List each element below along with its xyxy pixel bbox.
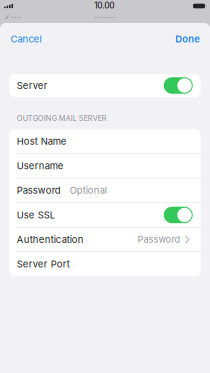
staticText: Host Name bbox=[17, 136, 67, 147]
staticText: Password bbox=[138, 234, 181, 245]
staticText: Use SSL bbox=[17, 209, 55, 221]
button[interactable]: Host Name bbox=[9, 129, 201, 153]
staticText: Password bbox=[17, 185, 61, 196]
button[interactable]: Username bbox=[9, 154, 201, 178]
staticText: 10.00 bbox=[94, 0, 114, 10]
staticText: OUTGOING MAIL SERVER bbox=[17, 114, 107, 123]
button[interactable]: Server Port bbox=[9, 252, 201, 276]
button[interactable]: Password bbox=[9, 178, 201, 202]
staticText: Done bbox=[175, 33, 200, 45]
button[interactable]: Use SSL bbox=[9, 203, 201, 227]
button[interactable]: Cancel bbox=[0, 23, 49, 51]
staticText: Cancel bbox=[10, 33, 41, 45]
staticText: Server Port bbox=[17, 258, 70, 270]
button[interactable]: Authentication bbox=[9, 228, 201, 251]
staticText: Username bbox=[17, 160, 64, 172]
staticText: Server bbox=[17, 80, 48, 91]
button[interactable]: Done bbox=[167, 23, 210, 51]
staticText: Authentication bbox=[17, 234, 84, 245]
button[interactable]: Server bbox=[9, 74, 201, 97]
staticText: Optional bbox=[70, 185, 107, 196]
